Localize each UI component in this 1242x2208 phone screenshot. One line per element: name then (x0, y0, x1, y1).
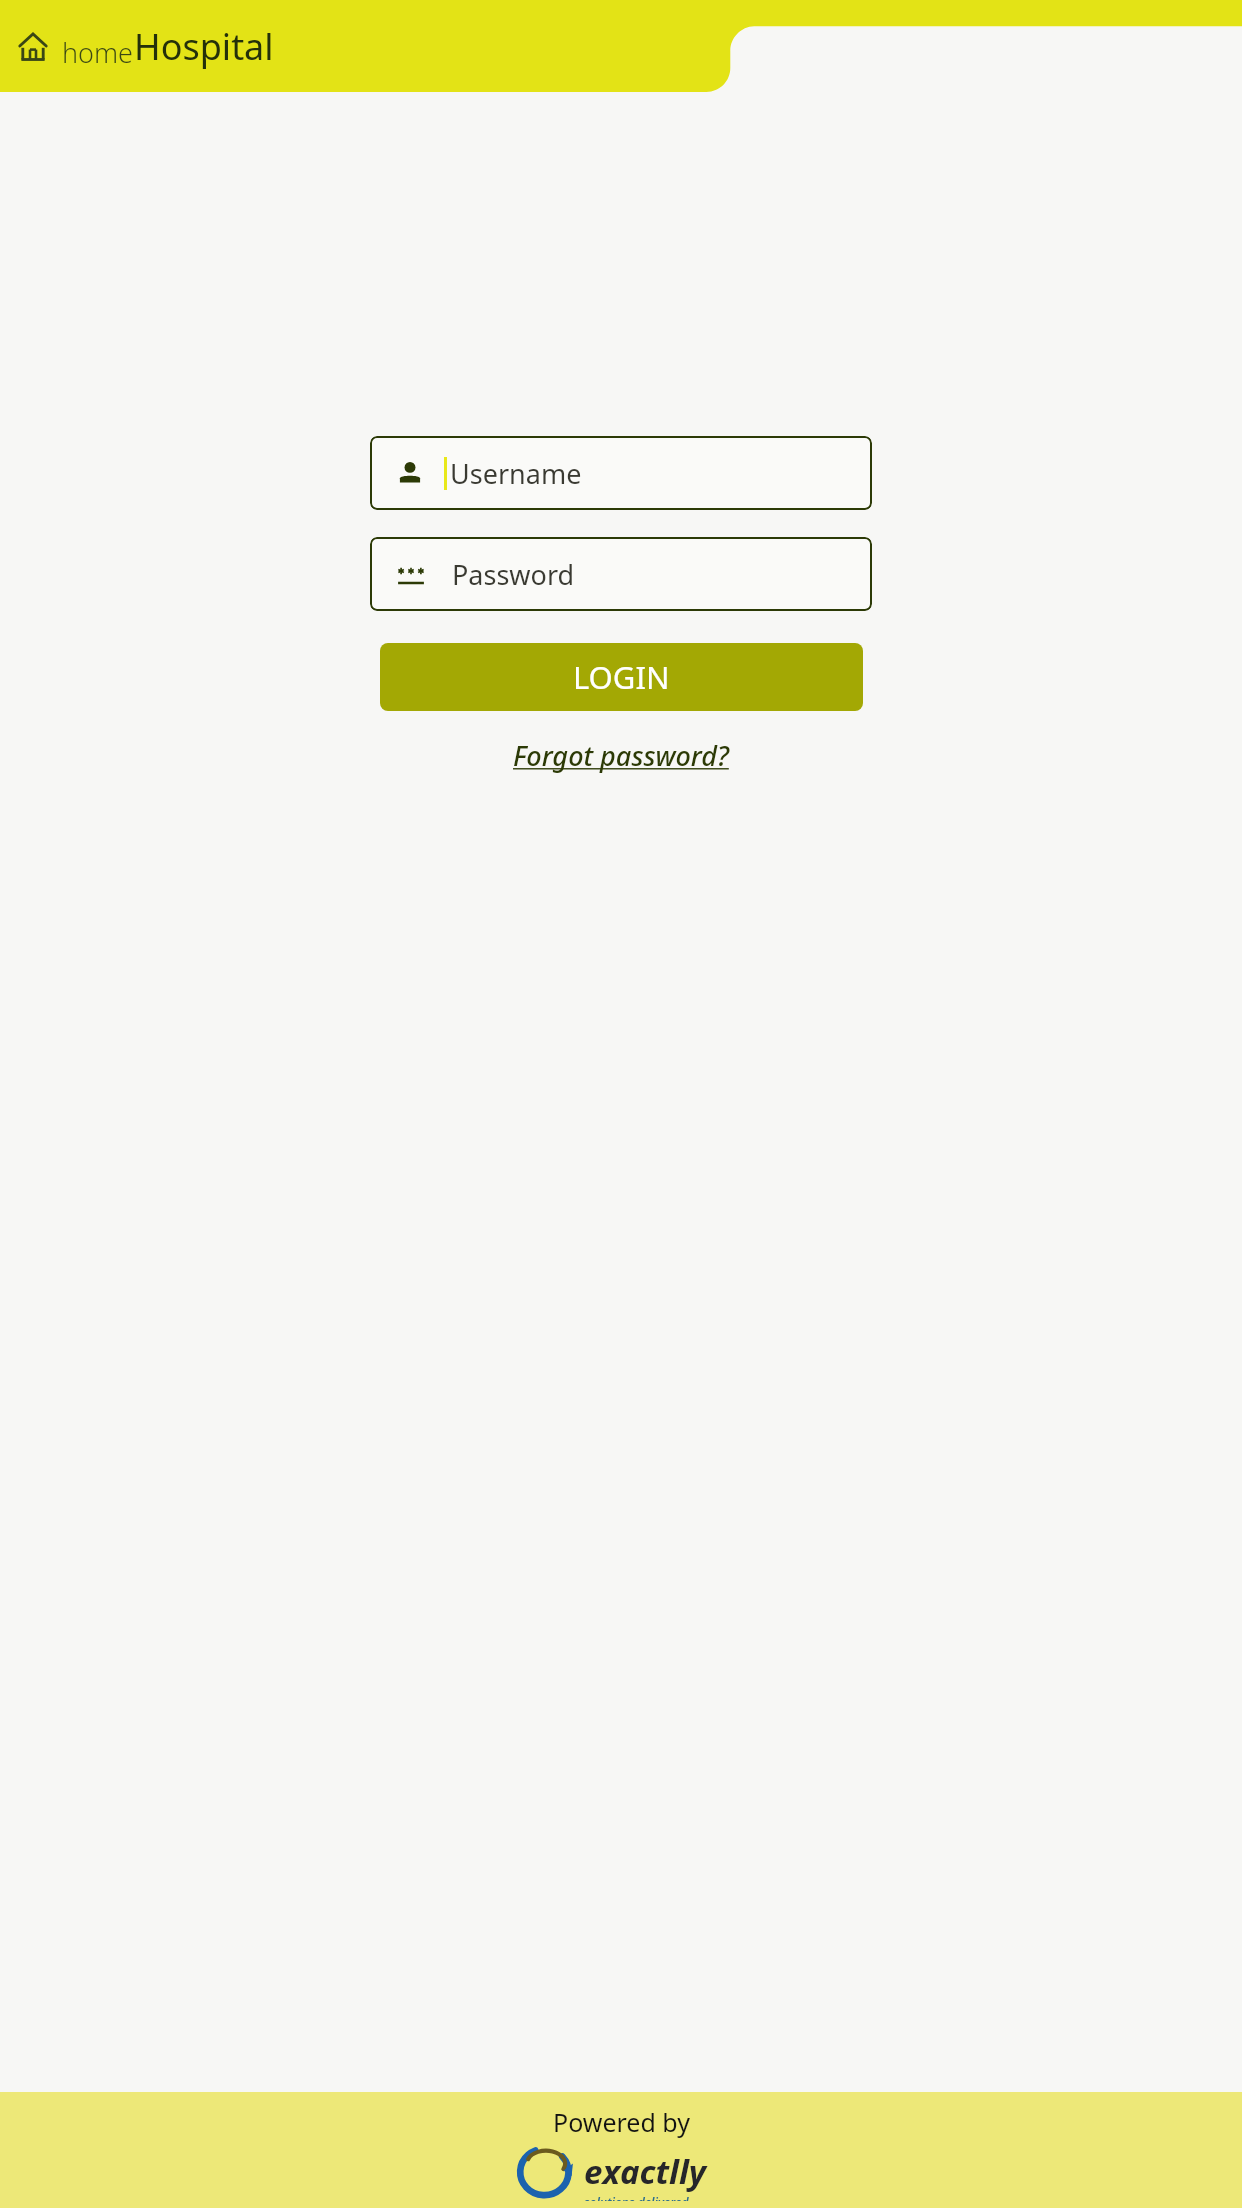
staticText: Powered by (553, 2105, 690, 2139)
staticText: solutions delivered (584, 2194, 689, 2201)
other: Home (18, 31, 48, 61)
button[interactable]: Password (370, 537, 872, 611)
staticText: Username (450, 455, 582, 492)
button[interactable]: LOGIN (380, 643, 863, 711)
staticText: Forgot password? (513, 737, 729, 774)
staticText: Password (452, 556, 575, 593)
staticText: home (62, 34, 134, 71)
staticText: LOGIN (573, 656, 670, 698)
staticText: exactlly (584, 2149, 706, 2194)
button[interactable]: Forgot password? (501, 731, 741, 780)
button[interactable]: Username (370, 436, 872, 510)
staticText: Hospital (134, 22, 274, 71)
